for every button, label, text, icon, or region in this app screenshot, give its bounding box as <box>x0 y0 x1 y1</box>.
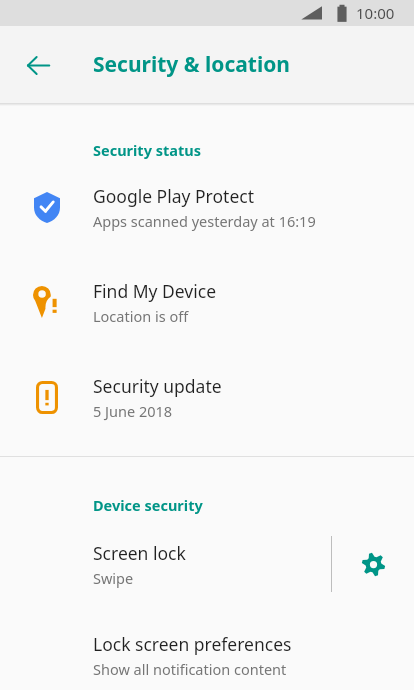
button[interactable]: Google Play Protect <box>0 176 414 238</box>
button[interactable]: Find My Device <box>0 271 414 333</box>
button[interactable]: Back <box>14 41 62 89</box>
staticText: Apps scanned yesterday at 16:19 <box>93 211 316 231</box>
staticText: Swipe <box>93 568 134 588</box>
staticText: Security status <box>93 140 414 160</box>
staticText: Lock screen preferences <box>93 632 292 656</box>
button[interactable]: Screen lock <box>0 533 414 595</box>
staticText: Show all notification content <box>93 659 287 679</box>
staticText: Google Play Protect <box>93 184 254 208</box>
staticText: Location is off <box>93 306 189 326</box>
staticText: Security update <box>93 374 222 398</box>
staticText: 5 June 2018 <box>93 401 173 421</box>
button[interactable]: Screen lock settings <box>332 533 414 595</box>
staticText: Find My Device <box>93 279 217 303</box>
staticText: Device security <box>93 495 414 515</box>
staticText: Screen lock <box>93 541 186 565</box>
button[interactable]: Security update <box>0 366 414 428</box>
staticText: Security & location <box>93 50 291 79</box>
staticText: 10:00 <box>356 3 395 23</box>
button[interactable]: Lock screen preferences <box>0 627 414 683</box>
